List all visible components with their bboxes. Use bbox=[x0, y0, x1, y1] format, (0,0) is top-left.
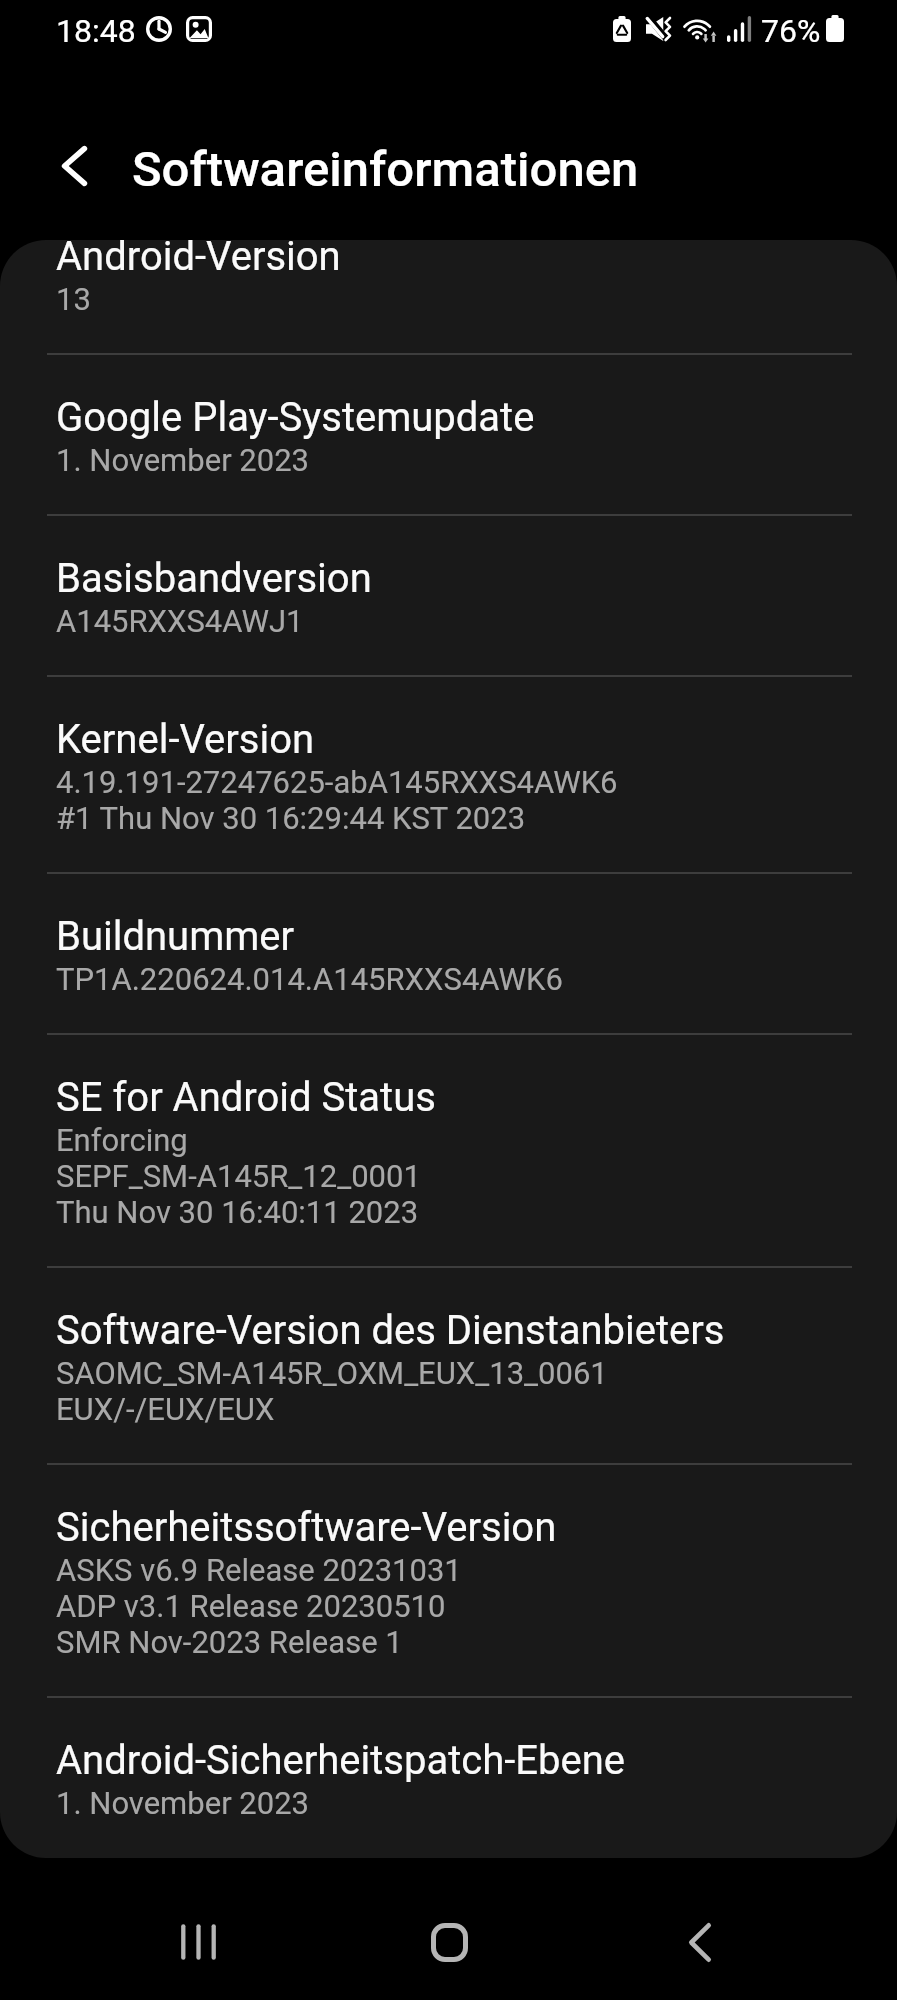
button[interactable]: Startbildschirm bbox=[394, 1887, 504, 1997]
staticText: Buildnummer bbox=[56, 910, 295, 961]
button[interactable]: Android-Version bbox=[0, 240, 897, 355]
staticText: Android-Sicherheitspatch-Ebene bbox=[56, 1734, 626, 1785]
staticText: 1. November 2023 bbox=[56, 1785, 310, 1821]
staticText: Sicherheitssoftware-Version bbox=[56, 1501, 557, 1552]
staticText: 13 bbox=[56, 281, 91, 317]
button[interactable]: Basisbandversion bbox=[0, 516, 897, 677]
button[interactable]: Android-Sicherheitspatch-Ebene bbox=[0, 1698, 897, 1857]
button[interactable]: Kernel-Version bbox=[0, 677, 897, 874]
staticText: Softwareinformationen bbox=[132, 141, 639, 198]
button[interactable]: Letzte Apps bbox=[143, 1887, 253, 1997]
staticText: 1. November 2023 bbox=[56, 442, 310, 478]
staticText: Enforcing SEPF_SM-A145R_12_0001 Thu Nov … bbox=[56, 1122, 421, 1230]
button[interactable]: Software-Version des Dienstanbieters bbox=[0, 1268, 897, 1465]
staticText: ASKS v6.9 Release 20231031 ADP v3.1 Rele… bbox=[56, 1552, 462, 1660]
staticText: 4.19.191-27247625-abA145RXXS4AWK6 #1 Thu… bbox=[56, 764, 618, 836]
button[interactable]: Sicherheitssoftware-Version bbox=[0, 1465, 897, 1698]
button[interactable]: Google Play-Systemupdate bbox=[0, 355, 897, 516]
staticText: Software-Version des Dienstanbieters bbox=[56, 1304, 725, 1355]
button[interactable]: Buildnummer bbox=[0, 874, 897, 1035]
staticText: SAOMC_SM-A145R_OXM_EUX_13_0061 EUX/-/EUX… bbox=[56, 1355, 608, 1427]
button[interactable]: Zurück bbox=[26, 118, 122, 214]
staticText: 76% bbox=[761, 12, 821, 50]
staticText: Android-Version bbox=[56, 240, 341, 281]
staticText: A145RXXS4AWJ1 bbox=[56, 603, 304, 639]
button[interactable]: Zurück bbox=[645, 1887, 755, 1997]
staticText: Google Play-Systemupdate bbox=[56, 391, 535, 442]
staticText: Basisbandversion bbox=[56, 552, 372, 603]
staticText: 18:48 bbox=[56, 12, 136, 50]
staticText: Kernel-Version bbox=[56, 713, 315, 764]
button[interactable]: SE for Android Status bbox=[0, 1035, 897, 1268]
staticText: SE for Android Status bbox=[56, 1071, 436, 1122]
staticText: TP1A.220624.014.A145RXXS4AWK6 bbox=[56, 961, 563, 997]
